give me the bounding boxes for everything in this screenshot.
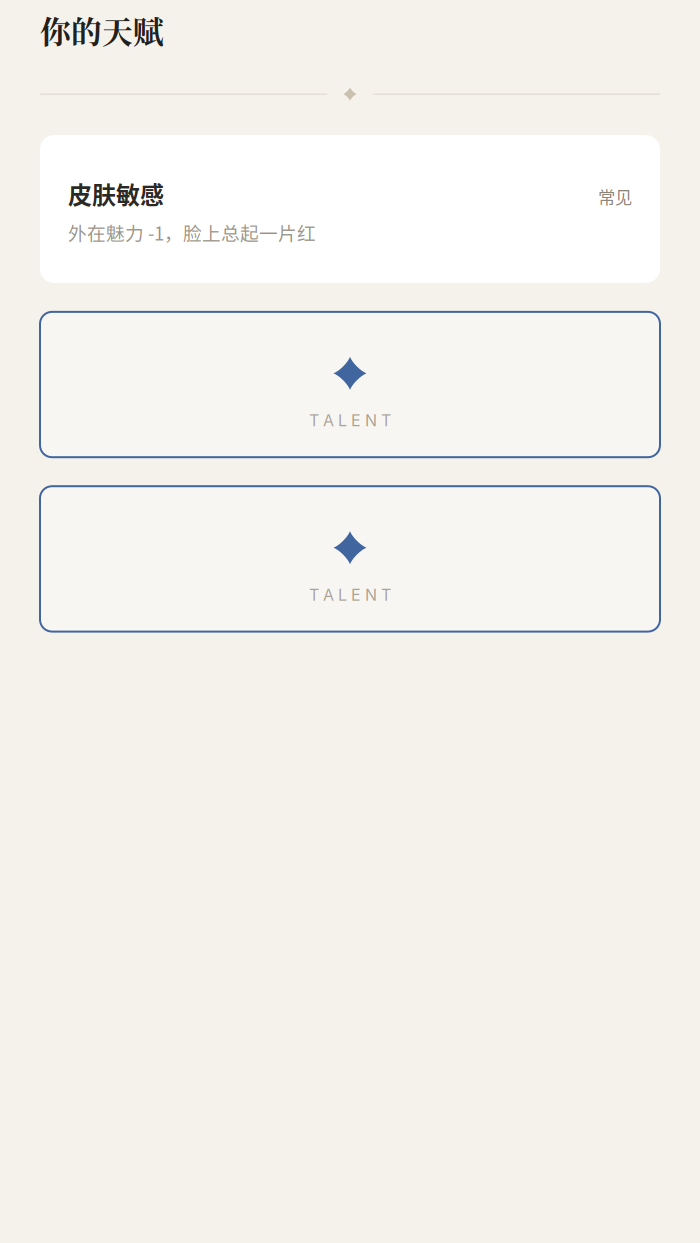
staticText: 皮肤敏感 <box>68 176 164 211</box>
staticText: 常见 <box>598 184 632 209</box>
staticText: 外在魅力 -1，脸上总起一片红 <box>68 219 316 246</box>
staticText: 你的天赋 <box>40 8 164 52</box>
staticText: T A L E N T <box>309 585 391 605</box>
button[interactable]: 皮肤敏感 <box>40 135 660 283</box>
staticText: T A L E N T <box>309 411 391 430</box>
button[interactable]: Empty talent slot <box>40 486 660 632</box>
button[interactable]: Empty talent slot <box>40 312 660 457</box>
